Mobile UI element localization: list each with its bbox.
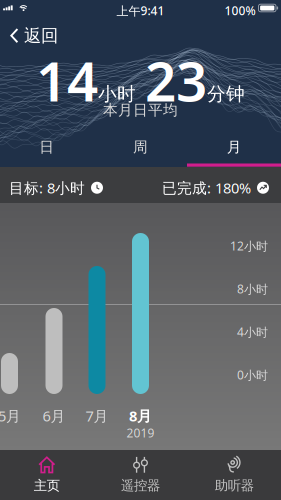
- staticText: 月: [227, 138, 242, 156]
- staticText: 周: [133, 138, 148, 156]
- staticText: 目标: 8小时: [9, 178, 85, 197]
- staticText: 8小时: [237, 281, 268, 297]
- button[interactable]: 主页: [0, 450, 94, 500]
- staticText: 日: [39, 138, 54, 156]
- staticText: 23: [145, 44, 207, 117]
- staticText: 遥控器: [121, 477, 160, 494]
- staticText: 本月日平均: [103, 101, 178, 119]
- staticText: 2019: [126, 425, 154, 441]
- staticText: 7月: [85, 406, 108, 425]
- staticText: 100%: [224, 3, 255, 19]
- staticText: 返回: [24, 25, 58, 46]
- button[interactable]: 助听器: [187, 450, 281, 500]
- button[interactable]: 遥控器: [94, 450, 187, 500]
- button[interactable]: 日: [0, 133, 94, 161]
- button[interactable]: 返回: [0, 20, 66, 51]
- staticText: 6月: [42, 406, 65, 425]
- staticText: 分钟: [207, 83, 245, 106]
- button[interactable]: 月: [187, 133, 281, 161]
- staticText: 上午9:41: [116, 3, 164, 19]
- staticText: 主页: [34, 477, 60, 494]
- staticText: 0小时: [237, 367, 268, 383]
- staticText: 14: [36, 44, 98, 117]
- staticText: 已完成: 180%: [162, 178, 251, 197]
- staticText: 8月: [129, 406, 152, 425]
- button[interactable]: 周: [94, 133, 187, 161]
- staticText: 助听器: [215, 477, 254, 494]
- staticText: 小时: [98, 83, 136, 106]
- staticText: 5月: [0, 406, 21, 425]
- staticText: 4小时: [237, 324, 268, 340]
- staticText: 12小时: [230, 238, 268, 254]
